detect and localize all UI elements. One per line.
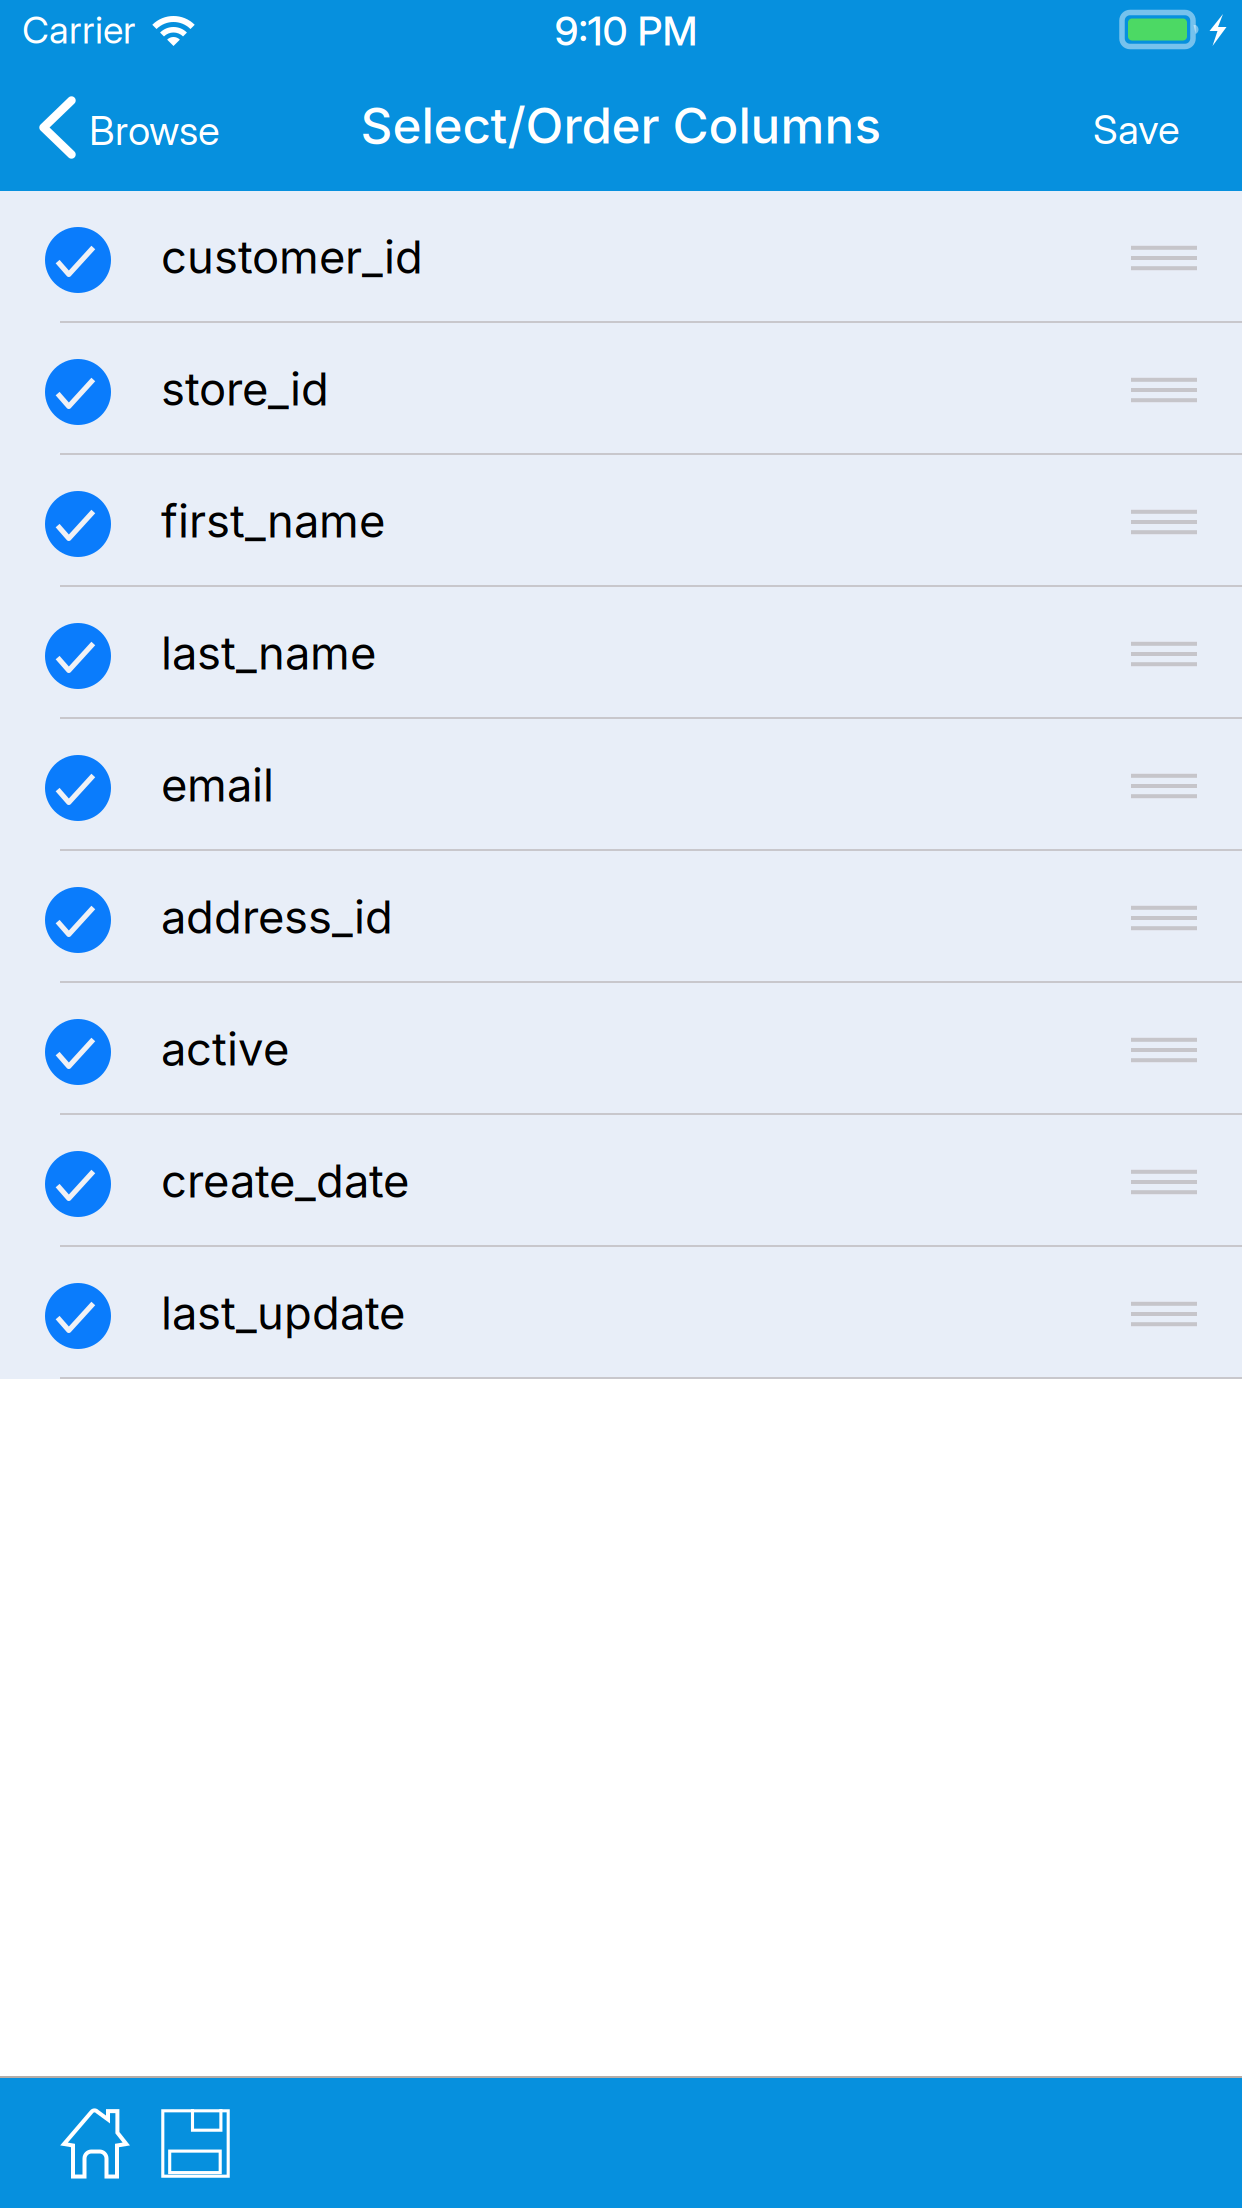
button[interactable]: address_id: [0, 851, 1242, 983]
staticText: 9:10 PM: [554, 7, 697, 55]
button[interactable]: last_name: [0, 587, 1242, 719]
staticText: Select/Order Columns: [360, 96, 881, 155]
staticText: active: [161, 1022, 289, 1076]
staticText: customer_id: [161, 230, 423, 284]
button[interactable]: create_date: [0, 1115, 1242, 1247]
button[interactable]: Browse: [0, 60, 240, 191]
button[interactable]: active: [0, 983, 1242, 1115]
button[interactable]: customer_id: [0, 191, 1242, 323]
staticText: Browse: [89, 106, 220, 155]
staticText: Save: [1093, 105, 1180, 154]
staticText: address_id: [161, 890, 393, 944]
staticText: last_name: [161, 626, 376, 680]
button[interactable]: store_id: [0, 323, 1242, 455]
button[interactable]: last_update: [0, 1247, 1242, 1379]
button[interactable]: first_name: [0, 455, 1242, 587]
button[interactable]: Home: [0, 2076, 159, 2208]
button[interactable]: email: [0, 719, 1242, 851]
staticText: Carrier: [22, 7, 135, 53]
staticText: last_update: [161, 1286, 405, 1340]
staticText: first_name: [161, 494, 385, 548]
button[interactable]: Save: [159, 2076, 258, 2208]
staticText: email: [161, 758, 274, 812]
staticText: store_id: [161, 362, 329, 416]
staticText: create_date: [161, 1154, 409, 1208]
button[interactable]: Save: [1063, 60, 1242, 191]
